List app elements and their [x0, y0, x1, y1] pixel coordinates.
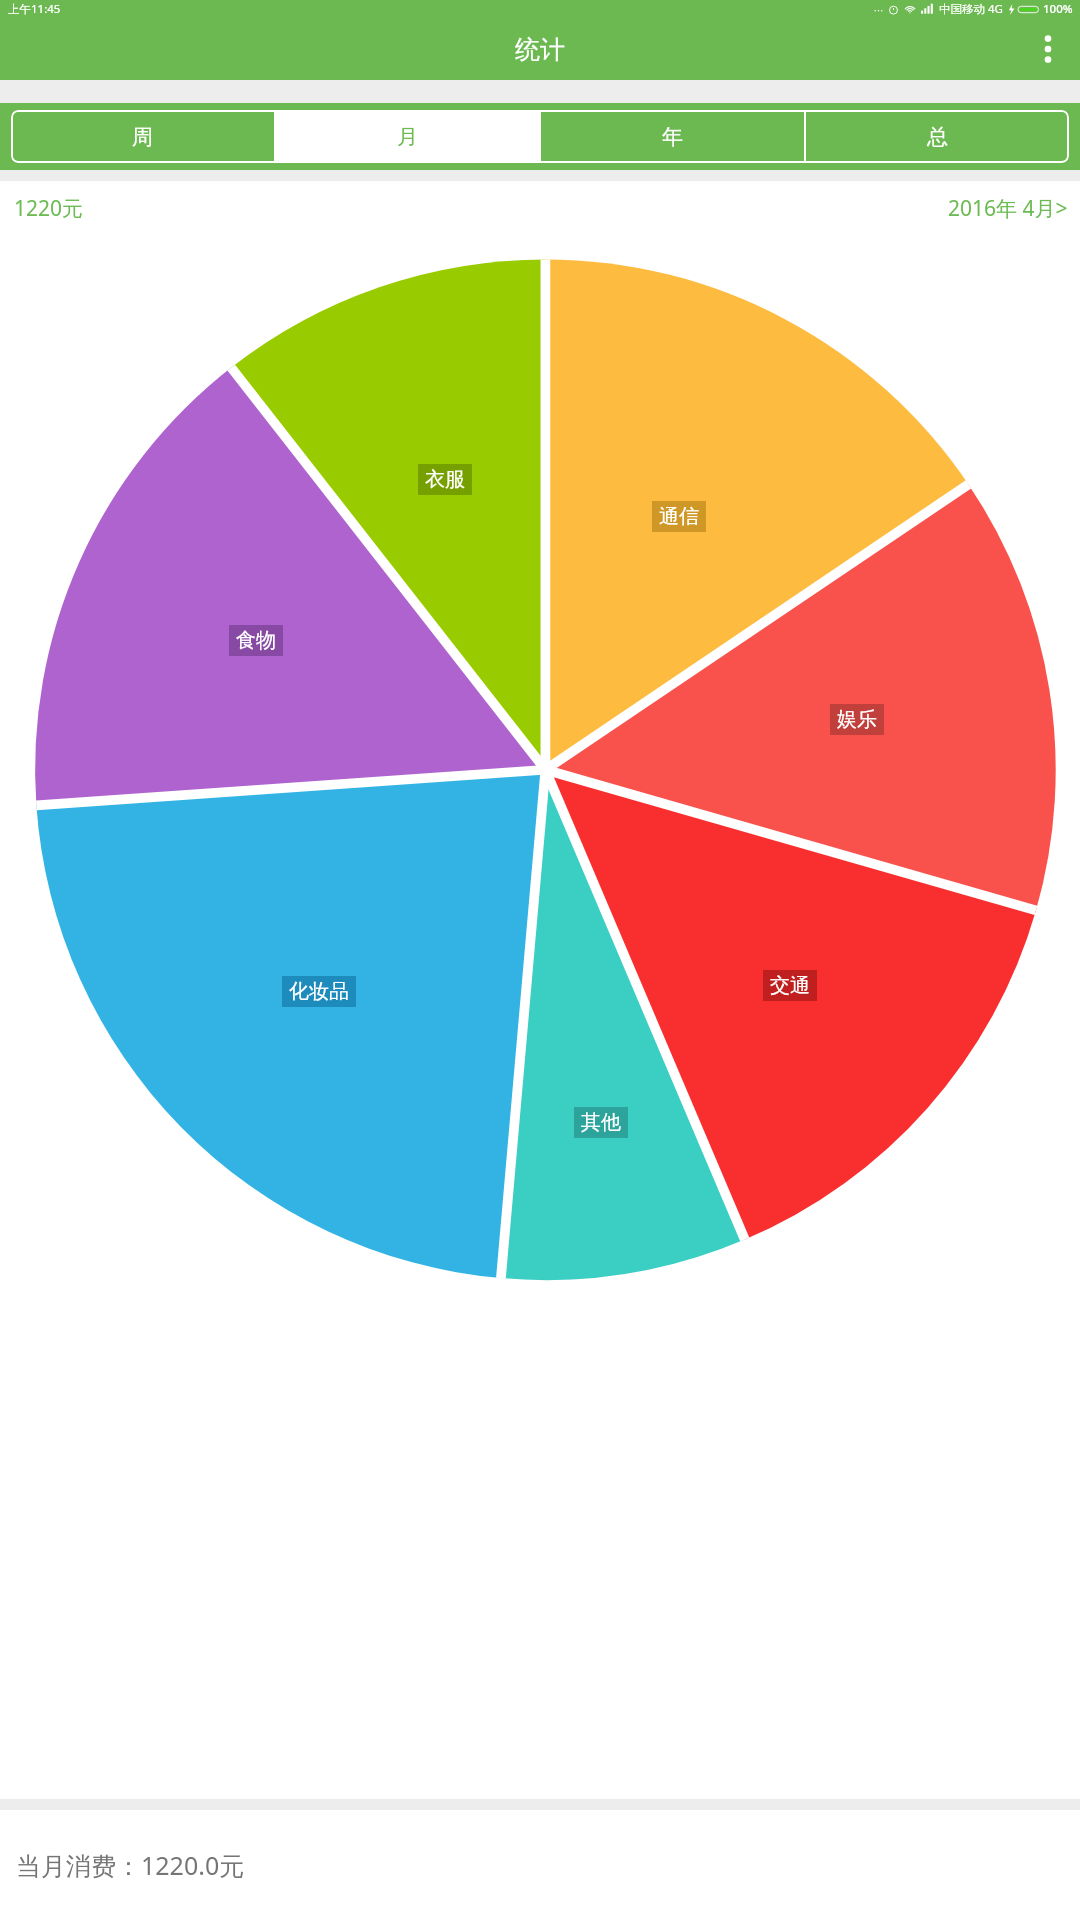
staticText: 年 [662, 124, 683, 150]
staticText: 食物 [236, 628, 276, 653]
staticText: 化妆品 [289, 979, 349, 1004]
button[interactable]: 月 [276, 110, 539, 163]
staticText: 周 [132, 124, 153, 150]
staticText: 通信 [659, 504, 699, 529]
staticText: 统计 [515, 34, 565, 65]
staticText: 其他 [581, 1110, 621, 1135]
staticText: 娱乐 [837, 707, 877, 732]
staticText: 中国移动 4G [939, 1, 1003, 17]
staticText: 当月消费：1220.0元 [16, 1848, 245, 1882]
button[interactable]: 2016年 4月> [936, 188, 1080, 229]
staticText: 交通 [770, 973, 810, 998]
button[interactable]: 年 [541, 110, 804, 163]
staticText: 月 [397, 124, 418, 150]
staticText: 总 [927, 124, 948, 150]
button[interactable]: 周 [11, 110, 274, 163]
staticText: 衣服 [425, 467, 465, 492]
staticText: 上午11:45 [8, 1, 61, 17]
staticText: 100% [1043, 1, 1073, 17]
button[interactable]: More options [1026, 27, 1070, 71]
staticText: 1220元 [14, 194, 84, 223]
staticText: 2016年 4月> [948, 194, 1068, 223]
button[interactable]: 总 [806, 110, 1069, 163]
